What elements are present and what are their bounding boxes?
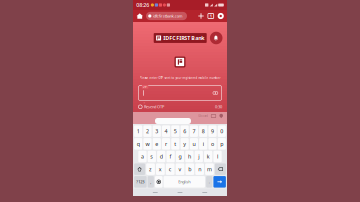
staticText: 8 <box>202 128 205 135</box>
staticText: 08:26 <box>136 1 149 9</box>
staticText: w <box>145 140 149 147</box>
button[interactable]: , <box>148 176 154 188</box>
staticText: z <box>149 166 152 173</box>
button[interactable]: c <box>166 163 174 175</box>
button[interactable]: k <box>204 151 212 162</box>
button[interactable]: v <box>176 163 184 175</box>
button[interactable]: q <box>134 138 142 150</box>
button[interactable]: l <box>213 151 222 162</box>
button[interactable]: Change keyboard <box>155 176 162 188</box>
button[interactable]: 0 <box>218 125 226 137</box>
button[interactable]: y <box>181 138 189 150</box>
staticText: 6 <box>183 128 186 135</box>
staticText: 3 <box>155 128 158 135</box>
staticText: f <box>170 153 172 160</box>
staticText: 0:30 <box>215 104 222 109</box>
staticText: Please enter OTP sent to your registered… <box>139 76 220 80</box>
button[interactable]: ?123 <box>134 176 147 188</box>
button[interactable]: d <box>157 151 165 162</box>
staticText: c <box>169 166 172 173</box>
button[interactable]: t <box>171 138 179 150</box>
staticText: o <box>211 140 214 147</box>
button[interactable]: i <box>199 138 207 150</box>
button[interactable]: n <box>195 163 204 175</box>
button[interactable]: f <box>166 151 175 162</box>
staticText: i <box>203 140 204 147</box>
button[interactable]: Enter <box>213 176 226 188</box>
staticText: Gboard <box>198 114 208 118</box>
staticText: g <box>178 153 181 160</box>
button[interactable]: x <box>156 163 165 175</box>
staticText: a <box>141 153 144 160</box>
staticText: y <box>183 140 186 147</box>
button[interactable]: 1 <box>134 125 142 137</box>
staticText: 2 <box>146 128 149 135</box>
button[interactable]: New tab <box>198 13 204 19</box>
staticText: s <box>150 153 153 160</box>
button[interactable]: 7 <box>190 125 198 137</box>
staticText: 1 <box>210 13 212 19</box>
staticText: 1 <box>137 128 140 135</box>
button[interactable]: m <box>205 163 214 175</box>
staticText: IDFC FIRST Bank <box>163 34 204 42</box>
button[interactable]: 6 <box>181 125 189 137</box>
button[interactable]: Back <box>153 192 158 193</box>
staticText: e <box>155 140 158 147</box>
button[interactable]: Resend OTP <box>144 104 164 109</box>
button[interactable]: Notifications <box>210 32 222 44</box>
staticText: . <box>209 179 210 184</box>
button[interactable]: o <box>208 138 217 150</box>
button[interactable]: Home <box>136 12 143 20</box>
staticText: d <box>160 153 163 160</box>
button[interactable]: 4 <box>162 125 170 137</box>
button[interactable]: . <box>206 176 212 188</box>
button[interactable]: a <box>138 151 147 162</box>
button[interactable]: u <box>190 138 198 150</box>
staticText: r <box>165 140 167 147</box>
button[interactable]: Menu <box>217 13 224 19</box>
staticText: t <box>174 140 176 147</box>
staticText: 7 <box>192 128 195 135</box>
staticText: , <box>150 179 151 184</box>
button[interactable]: English <box>164 176 205 188</box>
button[interactable]: Backspace <box>215 163 226 175</box>
button[interactable]: r <box>162 138 170 150</box>
staticText: 0 <box>220 128 223 135</box>
button[interactable]: p <box>218 138 226 150</box>
staticText: idfcfirstbank.com <box>153 13 183 19</box>
staticText: j <box>198 153 199 160</box>
button[interactable]: j <box>195 151 203 162</box>
staticText: English <box>178 179 190 184</box>
button[interactable]: Tabs <box>208 13 214 19</box>
button[interactable]: h <box>185 151 193 162</box>
button[interactable]: idfcfirstbank.com <box>146 12 187 20</box>
button[interactable]: 2 <box>143 125 152 137</box>
button[interactable]: e <box>153 138 161 150</box>
button[interactable]: b <box>185 163 194 175</box>
staticText: 9 <box>211 128 214 135</box>
button[interactable]: s <box>148 151 156 162</box>
button[interactable]: 5 <box>171 125 179 137</box>
button[interactable]: 9 <box>208 125 217 137</box>
staticText: m <box>207 166 212 173</box>
staticText: p <box>220 140 223 147</box>
staticText: u <box>192 140 195 147</box>
button[interactable]: 3 <box>153 125 161 137</box>
staticText: ?123 <box>136 179 144 184</box>
button[interactable]: 8 <box>199 125 207 137</box>
button[interactable]: Shift <box>134 163 145 175</box>
staticText: OTP <box>143 85 148 88</box>
staticText: l <box>217 153 218 160</box>
staticText: x <box>159 166 162 173</box>
staticText: k <box>207 153 210 160</box>
staticText: q <box>137 140 140 147</box>
button[interactable]: Recents <box>202 192 207 193</box>
staticText: b <box>188 166 191 173</box>
staticText: v <box>178 166 181 173</box>
staticText: Resend OTP <box>144 104 164 109</box>
staticText: 4 <box>165 128 168 135</box>
button[interactable]: z <box>146 163 155 175</box>
button[interactable]: g <box>176 151 184 162</box>
button[interactable]: w <box>143 138 152 150</box>
